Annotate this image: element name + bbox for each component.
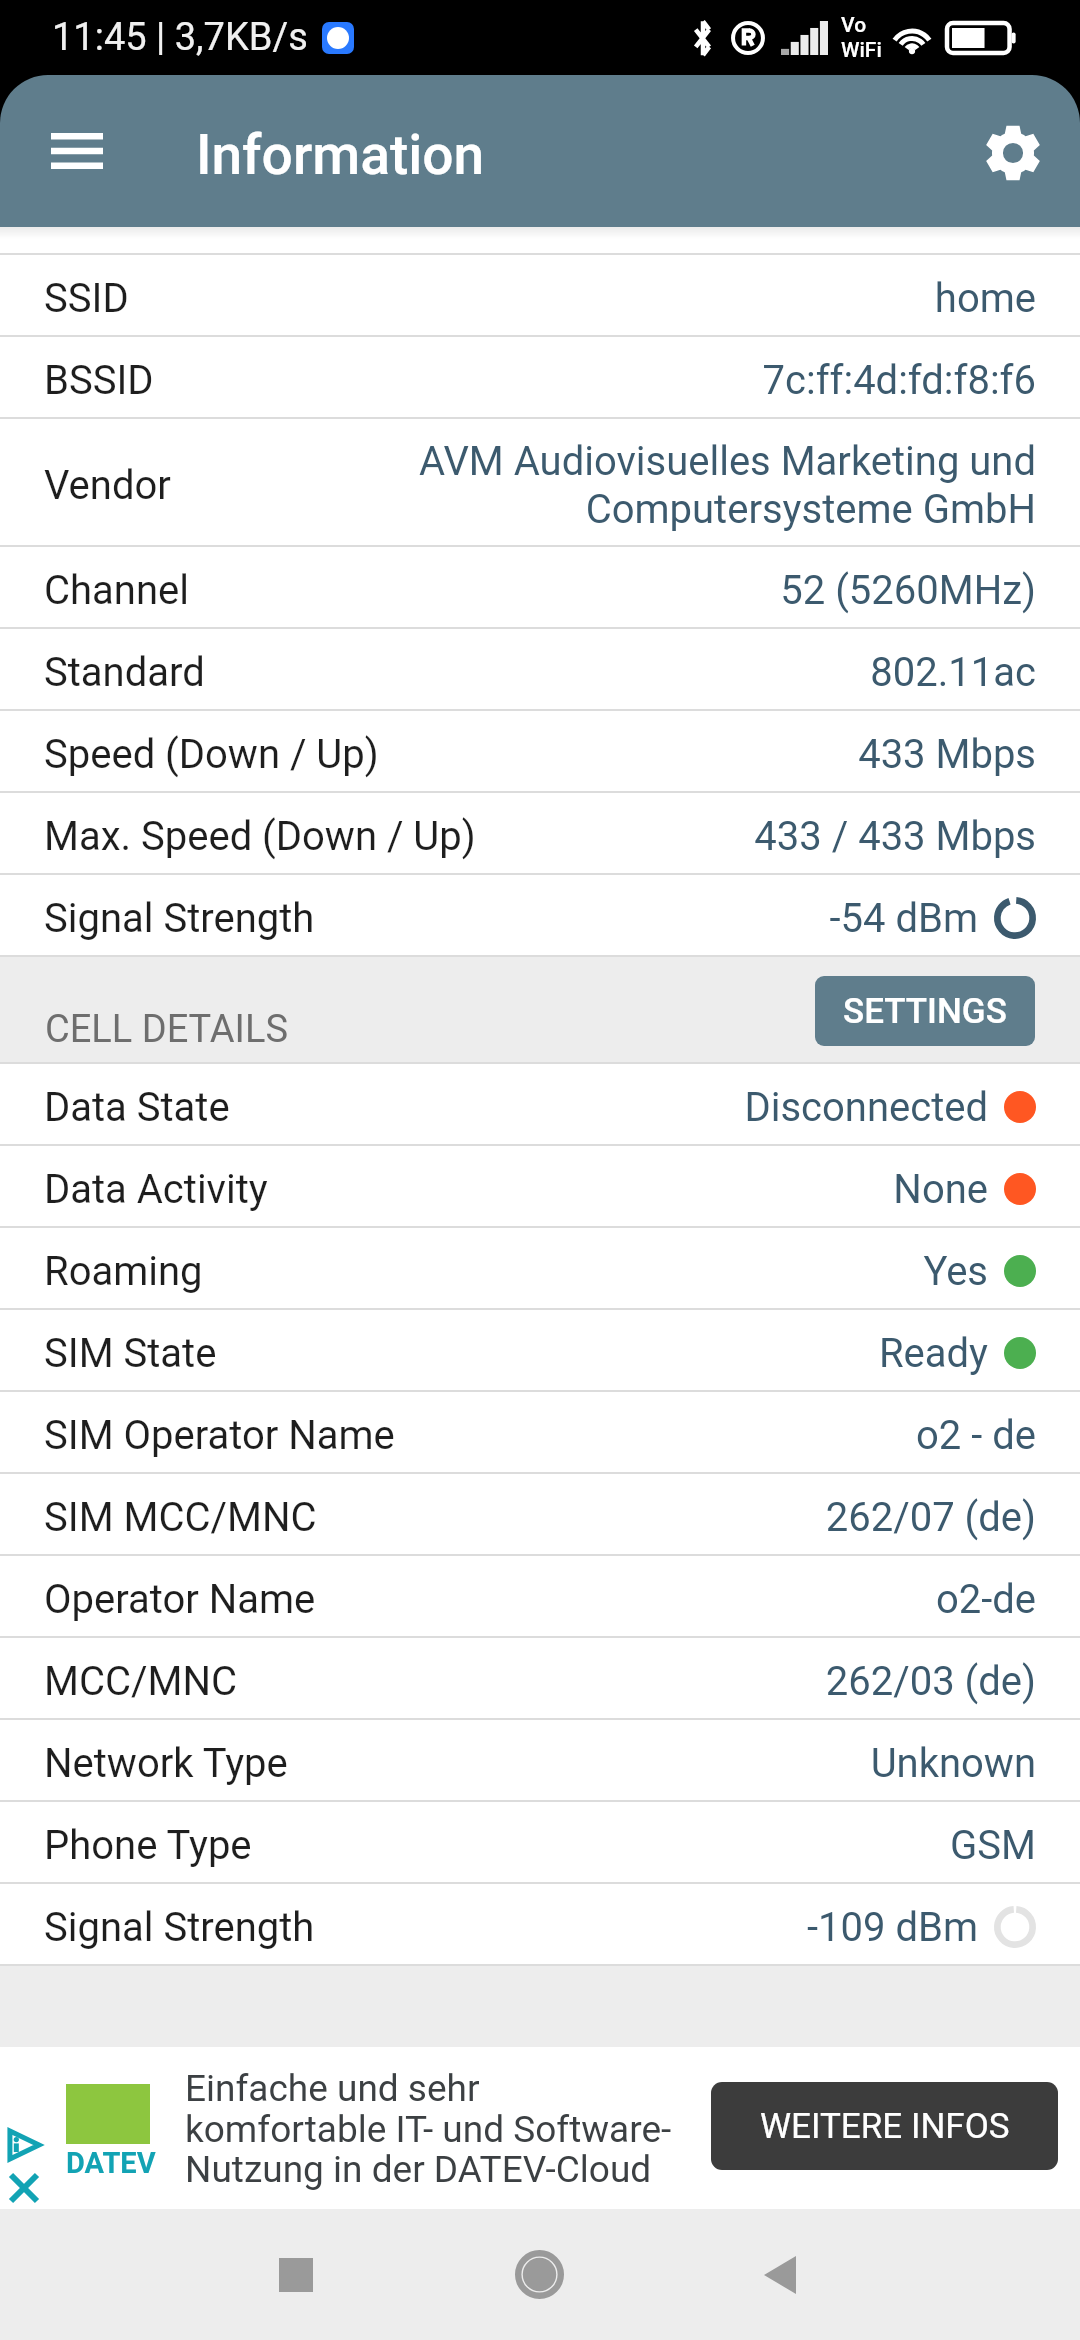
staticText: SIM Operator Name: [44, 1412, 395, 1459]
staticText: Phone Type: [44, 1822, 252, 1869]
button[interactable]: Speed (Down / Up): [0, 711, 1080, 793]
staticText: Ready: [878, 1330, 988, 1377]
button[interactable]: Network Type: [0, 1720, 1080, 1802]
button[interactable]: Roaming: [0, 1228, 1080, 1310]
staticText: Einfache und sehr komfortable IT- und So…: [185, 2067, 672, 2191]
staticText: home: [934, 275, 1036, 322]
staticText: o2 - de: [916, 1412, 1036, 1459]
button[interactable]: Vendor: [0, 419, 1080, 547]
staticText: 11:45 | 3,7KB/s: [52, 15, 308, 60]
staticText: SETTINGS: [843, 991, 1007, 1032]
staticText: Standard: [44, 649, 205, 696]
staticText: Roaming: [44, 1248, 203, 1295]
staticText: Data State: [44, 1084, 230, 1131]
button[interactable]: Standard: [0, 629, 1080, 711]
staticText: Network Type: [44, 1740, 288, 1787]
button[interactable]: BSSID: [0, 337, 1080, 419]
staticText: 52 (5260MHz): [780, 567, 1036, 614]
staticText: Data Activity: [44, 1166, 268, 1213]
button[interactable]: Signal Strength: [0, 875, 1080, 957]
staticText: 802.11ac: [870, 649, 1036, 696]
staticText: Vo: [841, 13, 867, 38]
button[interactable]: SSID: [0, 255, 1080, 337]
button[interactable]: Recent apps: [252, 2231, 340, 2319]
button[interactable]: Channel: [0, 547, 1080, 629]
button[interactable]: SIM Operator Name: [0, 1392, 1080, 1474]
staticText: -54 dBm: [829, 895, 978, 942]
staticText: o2-de: [935, 1576, 1036, 1623]
button[interactable]: Back: [736, 2231, 824, 2319]
staticText: Disconnected: [744, 1084, 988, 1131]
button[interactable]: Max. Speed (Down / Up): [0, 793, 1080, 875]
button[interactable]: Operator Name: [0, 1556, 1080, 1638]
staticText: Speed (Down / Up): [44, 731, 379, 778]
button[interactable]: SETTINGS: [815, 976, 1035, 1046]
staticText: 262/03 (de): [825, 1658, 1036, 1705]
button[interactable]: Signal Strength: [0, 1884, 1080, 1966]
staticText: WiFi: [841, 38, 882, 63]
staticText: Information: [196, 123, 485, 187]
staticText: Signal Strength: [44, 1904, 315, 1951]
button[interactable]: Data Activity: [0, 1146, 1080, 1228]
staticText: SIM State: [44, 1330, 217, 1377]
staticText: SIM MCC/MNC: [44, 1494, 317, 1541]
button[interactable]: MCC/MNC: [0, 1638, 1080, 1720]
staticText: Unknown: [870, 1740, 1036, 1787]
button[interactable]: SIM State: [0, 1310, 1080, 1392]
staticText: GSM: [950, 1822, 1036, 1869]
staticText: WEITERE INFOS: [760, 2106, 1010, 2147]
staticText: 262/07 (de): [825, 1494, 1036, 1541]
staticText: SSID: [44, 275, 129, 322]
staticText: 433 Mbps: [858, 731, 1036, 778]
staticText: 433 / 433 Mbps: [754, 813, 1036, 860]
button[interactable]: Close ad: [11, 2175, 37, 2201]
button[interactable]: Open navigation menu: [31, 105, 123, 197]
staticText: DATEV: [66, 2146, 156, 2180]
staticText: MCC/MNC: [44, 1658, 237, 1705]
staticText: BSSID: [44, 357, 154, 404]
button[interactable]: Data State: [0, 1064, 1080, 1146]
button[interactable]: WEITERE INFOS: [711, 2082, 1058, 2170]
staticText: Channel: [44, 567, 189, 614]
staticText: Max. Speed (Down / Up): [44, 813, 476, 860]
staticText: CELL DETAILS: [45, 1007, 288, 1052]
button[interactable]: Home: [495, 2230, 583, 2318]
staticText: Operator Name: [44, 1576, 316, 1623]
staticText: -109 dBm: [807, 1904, 978, 1951]
staticText: Signal Strength: [44, 895, 315, 942]
staticText: 7c:ff:4d:fd:f8:f6: [762, 357, 1036, 404]
button[interactable]: Phone Type: [0, 1802, 1080, 1884]
staticText: AVM Audiovisuelles Marketing und Compute…: [411, 438, 1036, 533]
button[interactable]: Settings: [967, 107, 1059, 199]
button[interactable]: Ad information: [8, 2129, 40, 2161]
staticText: Yes: [923, 1248, 988, 1295]
staticText: Vendor: [44, 462, 171, 509]
button[interactable]: SIM MCC/MNC: [0, 1474, 1080, 1556]
staticText: None: [893, 1166, 988, 1213]
